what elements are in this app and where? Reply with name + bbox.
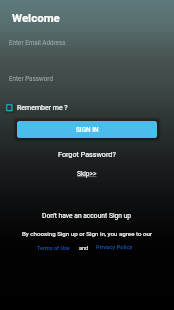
button[interactable]: Terms of Use (36, 243, 71, 253)
button[interactable]: Enter Password (0, 69, 174, 87)
staticText: Welcome (12, 11, 60, 24)
button[interactable]: Privacy Policy (95, 242, 134, 253)
staticText: SIGN IN (76, 126, 99, 134)
staticText: Enter Email Address (9, 39, 66, 46)
staticText: Enter Password (9, 75, 53, 82)
button[interactable]: Remember me ? (5, 101, 68, 115)
staticText: Remember me ? (17, 104, 68, 112)
button[interactable]: Don't have an account Sign up (40, 210, 134, 222)
button[interactable]: Enter Email Address (0, 33, 174, 51)
staticText: By choosing Sign up or Sign in, you agre… (22, 230, 153, 237)
button[interactable]: Forgot Password? (56, 148, 118, 160)
staticText: and (79, 245, 89, 251)
button[interactable]: SIGN IN (17, 121, 157, 138)
button[interactable]: Skip>> (75, 168, 99, 180)
